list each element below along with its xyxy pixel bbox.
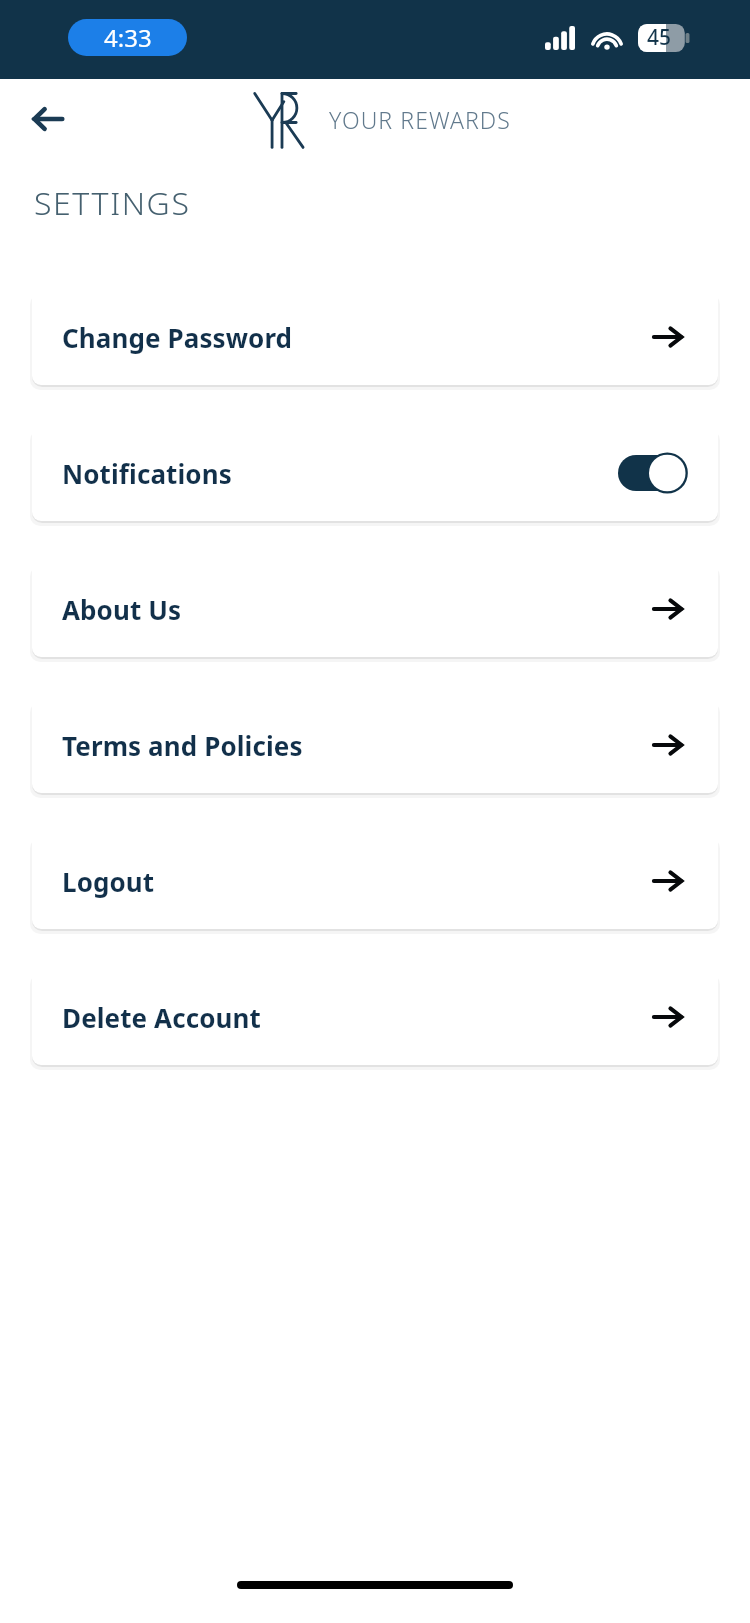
button[interactable]: Logout (32, 833, 718, 929)
button[interactable]: Notifications (32, 425, 718, 521)
button[interactable]: Open (646, 859, 690, 903)
button[interactable]: Back (22, 93, 74, 145)
button[interactable]: Open (646, 315, 690, 359)
staticText: About Us (62, 592, 646, 627)
button[interactable]: Open (646, 723, 690, 767)
button[interactable]: About Us (32, 561, 718, 657)
staticText: 4:33 (104, 21, 152, 54)
staticText: Delete Account (62, 1000, 646, 1035)
staticText: Logout (62, 864, 646, 899)
staticText: Terms and Policies (62, 728, 646, 763)
button[interactable]: Change Password (32, 289, 718, 385)
button[interactable]: Open (646, 587, 690, 631)
staticText: Change Password (62, 320, 646, 355)
staticText: Notifications (62, 456, 618, 491)
button[interactable]: Open (646, 995, 690, 1039)
staticText: YOUR REWARDS (329, 104, 511, 135)
button[interactable]: Delete Account (32, 969, 718, 1065)
staticText: 45 (647, 23, 672, 52)
staticText: SETTINGS (34, 181, 191, 225)
button[interactable]: Terms and Policies (32, 697, 718, 793)
button[interactable]: Notifications toggle, on (618, 452, 690, 494)
